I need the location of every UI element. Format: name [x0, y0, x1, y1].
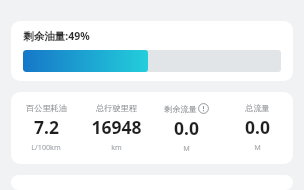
button[interactable]: 信息: [198, 103, 209, 114]
staticText: 总行驶里程: [96, 103, 137, 113]
button[interactable]: 剩余流量: [151, 103, 222, 153]
button[interactable]: 百公里耗油: [11, 103, 81, 152]
button[interactable]: 总行驶里程: [81, 103, 151, 152]
button[interactable]: 剩余油量:49%: [11, 21, 293, 81]
staticText: 剩余油量:49%: [23, 29, 90, 43]
staticText: 0.0: [174, 116, 199, 140]
staticText: 百公里耗油: [26, 103, 67, 113]
staticText: 16948: [91, 115, 142, 139]
button[interactable]: 总流量: [222, 103, 293, 152]
staticText: 剩余流量: [164, 104, 197, 114]
staticText: L/100km: [31, 142, 61, 152]
staticText: 7.2: [34, 115, 59, 139]
staticText: M: [183, 143, 190, 153]
staticText: 总流量: [245, 103, 270, 113]
staticText: 0.0: [245, 115, 270, 139]
staticText: km: [111, 142, 122, 152]
staticText: M: [254, 142, 261, 152]
button[interactable]: 百公里耗油: [11, 92, 293, 164]
